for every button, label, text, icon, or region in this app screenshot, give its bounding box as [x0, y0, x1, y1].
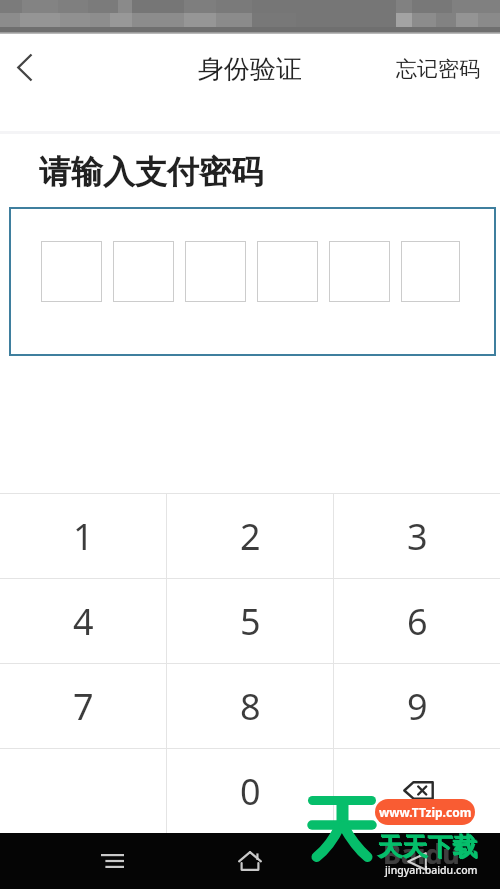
staticText: 2 [240, 512, 261, 561]
staticText: 身份验证 [198, 53, 302, 86]
button[interactable]: Home [194, 833, 306, 889]
staticText: Baidu [383, 835, 460, 872]
staticText: 7 [73, 682, 94, 731]
staticText: 4 [73, 597, 94, 646]
button[interactable]: 9 [334, 664, 500, 748]
button[interactable]: 忘记密码 [396, 56, 480, 82]
staticText: 6 [407, 597, 428, 646]
button[interactable]: Backspace [334, 749, 500, 833]
button[interactable]: 4 [0, 579, 166, 663]
button[interactable]: 2 [167, 494, 333, 578]
staticText: 0 [240, 767, 261, 816]
staticText: 天天下载 [378, 832, 478, 863]
staticText: jingyan.baidu.com [385, 863, 478, 877]
button[interactable]: Back [0, 34, 52, 134]
staticText: 忘记密码 [396, 56, 480, 82]
staticText: 1 [73, 512, 94, 561]
button[interactable]: Back [361, 833, 473, 889]
button[interactable]: 6 [334, 579, 500, 663]
staticText: 5 [240, 597, 261, 646]
staticText: 请输入支付密码 [39, 152, 263, 192]
button[interactable]: 1 [0, 494, 166, 578]
button[interactable]: Menu [56, 833, 168, 889]
staticText: 天天下载 [377, 831, 477, 862]
button[interactable]: 0 [167, 749, 333, 833]
button[interactable]: 7 [0, 664, 166, 748]
staticText: 3 [407, 512, 428, 561]
staticText: 9 [407, 682, 428, 731]
staticText: www.TTzip.com [379, 804, 472, 820]
staticText: 8 [240, 682, 261, 731]
button[interactable]: 8 [167, 664, 333, 748]
button[interactable]: 5 [167, 579, 333, 663]
button[interactable]: 3 [334, 494, 500, 578]
